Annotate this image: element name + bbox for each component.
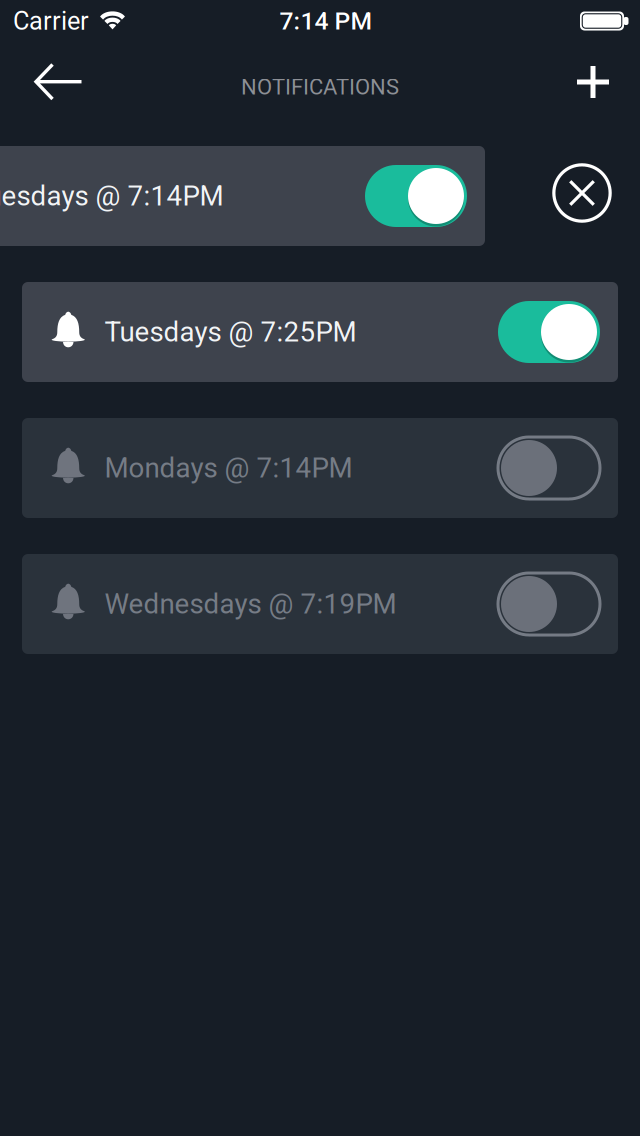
staticText: Tuesdays @ 7:25PM (104, 316, 356, 348)
staticText: Carrier (13, 6, 89, 36)
button[interactable]: Tuesdays @ 7:25PM (22, 282, 618, 382)
staticText: Tuesdays @ 7:14PM (0, 180, 223, 212)
button[interactable]: Tuesdays @ 7:14PM (0, 146, 485, 246)
button[interactable]: Back (18, 49, 100, 115)
button[interactable]: Add notification (559, 49, 627, 115)
staticText: Mondays @ 7:14PM (104, 452, 352, 484)
button[interactable]: Delete notification (552, 163, 612, 223)
staticText: Wednesdays @ 7:19PM (104, 588, 396, 620)
button[interactable]: Wednesdays @ 7:19PM (22, 554, 618, 654)
staticText: NOTIFICATIONS (241, 74, 399, 100)
button[interactable]: Mondays @ 7:14PM (22, 418, 618, 518)
staticText: 7:14 PM (279, 6, 372, 35)
